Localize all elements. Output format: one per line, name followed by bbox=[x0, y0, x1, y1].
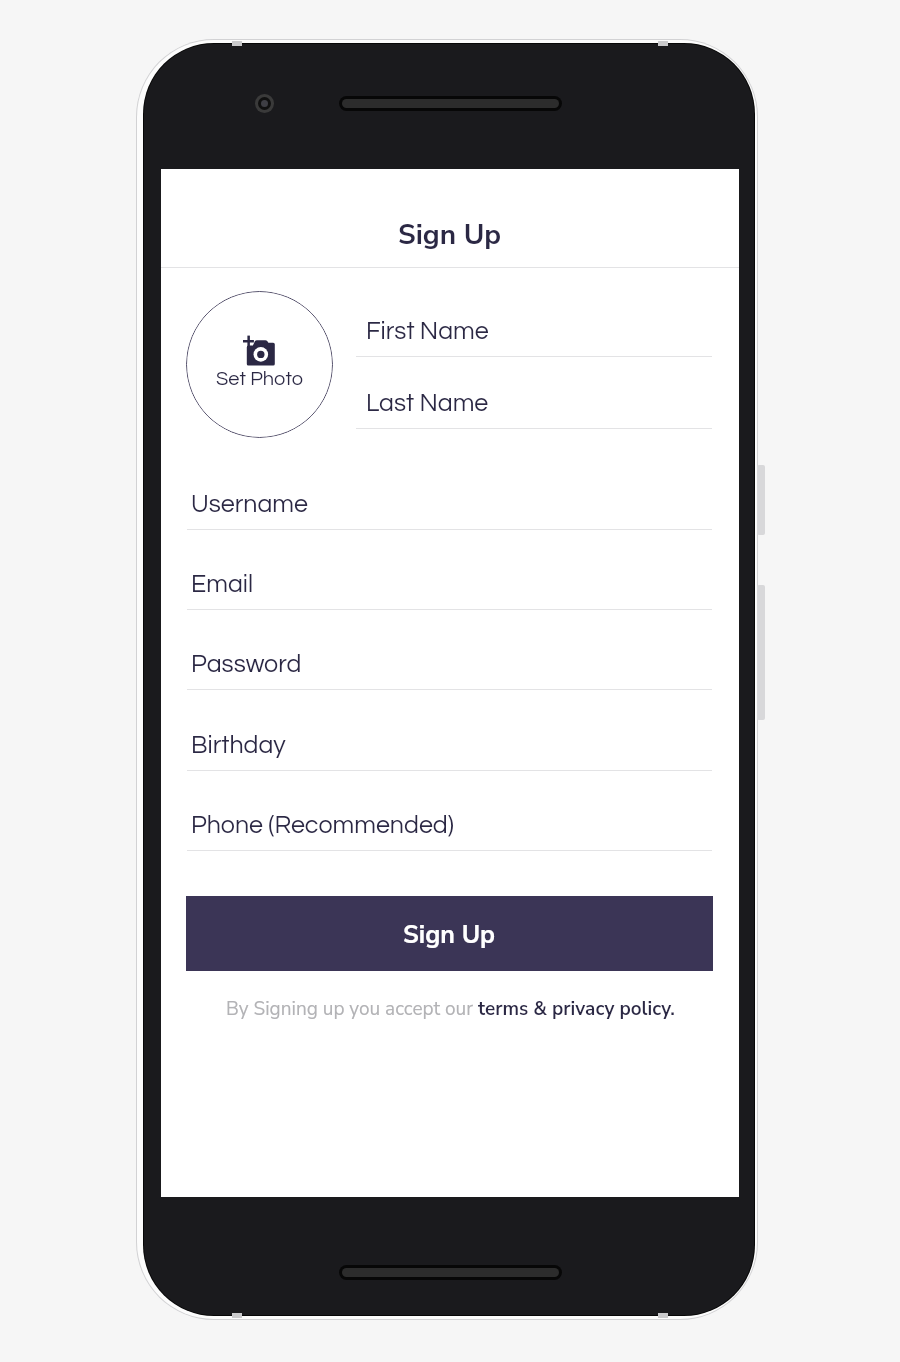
button[interactable]: Username bbox=[187, 471, 712, 530]
staticText: Last Name bbox=[366, 390, 489, 416]
button[interactable]: By Signing up you accept our terms & pri… bbox=[161, 996, 739, 1022]
button[interactable]: Set Photo bbox=[186, 291, 333, 438]
button[interactable]: Birthday bbox=[187, 712, 712, 771]
staticText: Set Photo bbox=[216, 369, 303, 390]
staticText: First Name bbox=[366, 318, 489, 344]
button[interactable]: First Name bbox=[356, 298, 712, 357]
staticText: Birthday bbox=[191, 732, 286, 758]
button[interactable]: Sign Up bbox=[186, 896, 713, 971]
button[interactable]: Email bbox=[187, 551, 712, 610]
staticText: Password bbox=[191, 651, 302, 677]
staticText: By Signing up you accept our terms & pri… bbox=[226, 996, 675, 1022]
staticText: Phone (Recommended) bbox=[191, 812, 454, 838]
button[interactable]: Sign Up bbox=[161, 169, 739, 267]
staticText: Sign Up bbox=[403, 918, 496, 952]
button[interactable]: Phone (Recommended) bbox=[187, 792, 712, 851]
staticText: Email bbox=[191, 571, 254, 597]
button[interactable]: Password bbox=[187, 631, 712, 690]
button[interactable]: Last Name bbox=[356, 370, 712, 429]
staticText: Username bbox=[191, 491, 308, 517]
staticText: Sign Up bbox=[398, 216, 502, 254]
